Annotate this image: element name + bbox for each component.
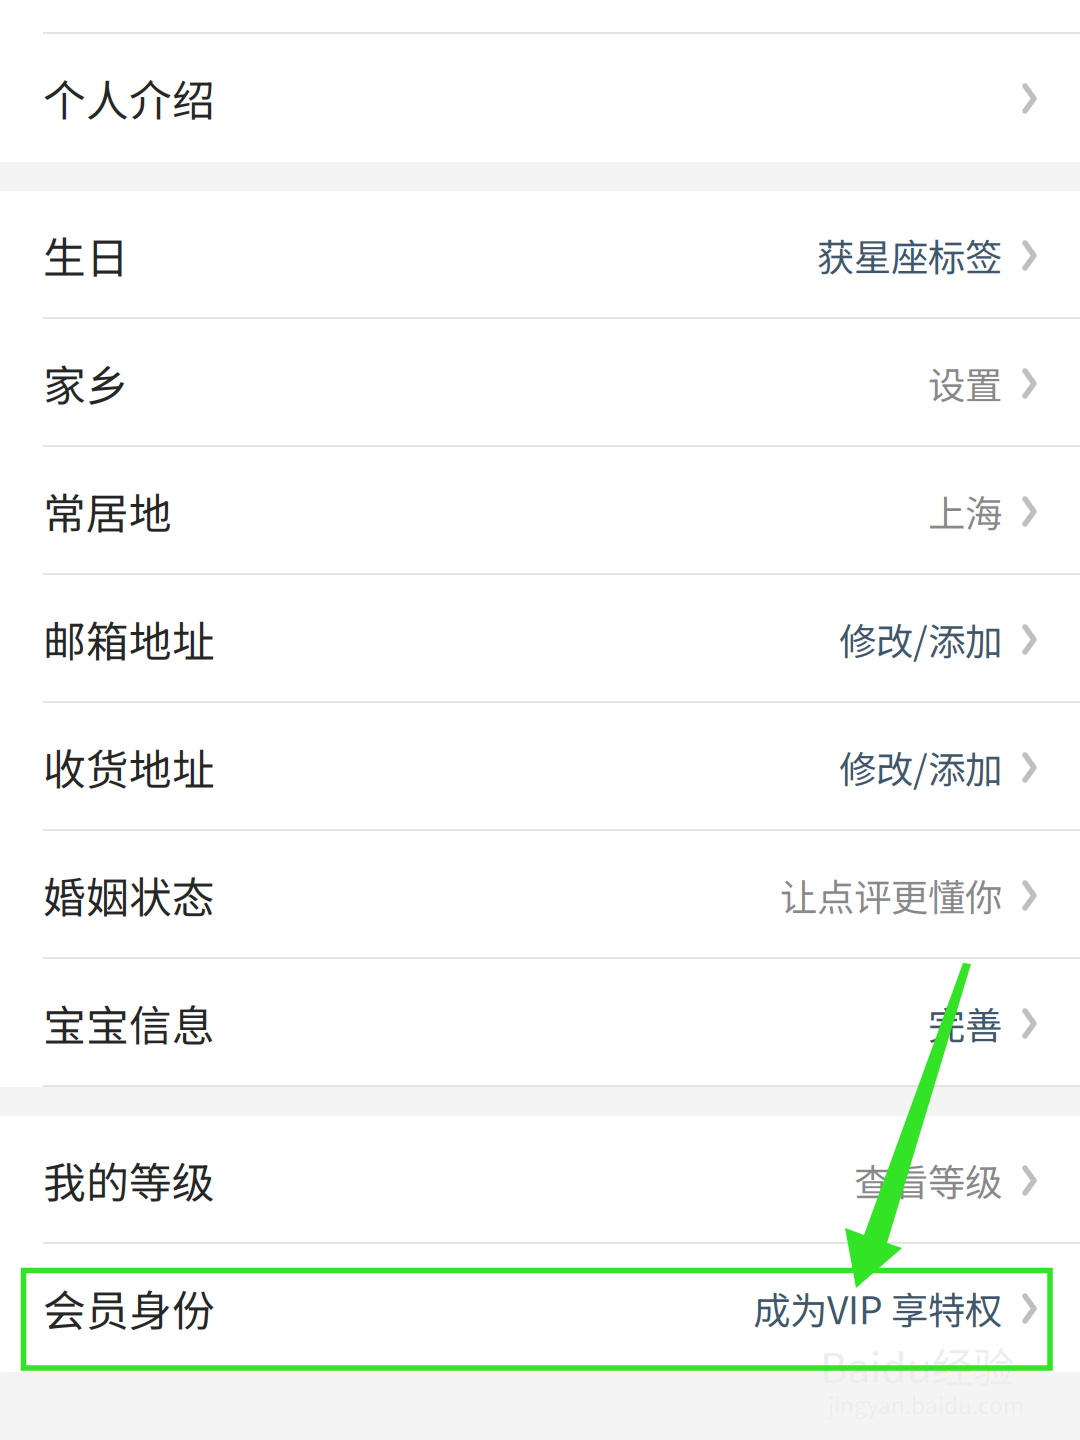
button[interactable]: 会员身份, 成为VIP 享特权 — [0, 1244, 1080, 1372]
staticText: 生日 — [43, 224, 129, 286]
staticText: 修改/添加 — [839, 740, 1002, 794]
staticText: 上海 — [928, 484, 1002, 538]
staticText: 邮箱地址 — [43, 608, 215, 670]
staticText: 获星座标签 — [817, 228, 1002, 282]
staticText: 家乡 — [43, 352, 129, 414]
staticText: 成为VIP 享特权 — [753, 1281, 1002, 1335]
button[interactable]: 婚姻状态, 让点评更懂你 — [0, 831, 1080, 959]
staticText: 常居地 — [43, 480, 172, 542]
staticText: 婚姻状态 — [43, 864, 215, 926]
button[interactable]: 收货地址, 修改/添加 — [0, 703, 1080, 831]
staticText: 设置 — [928, 356, 1002, 410]
staticText: 会员身份 — [43, 1277, 215, 1339]
button[interactable]: 宝宝信息, 完善 — [0, 959, 1080, 1087]
button[interactable]: 家乡, 设置 — [0, 319, 1080, 447]
staticText: 收货地址 — [43, 736, 215, 798]
staticText: 个人介绍 — [43, 67, 215, 129]
button[interactable]: 邮箱地址, 修改/添加 — [0, 575, 1080, 703]
button[interactable]: 常居地, 上海 — [0, 447, 1080, 575]
staticText: 我的等级 — [43, 1149, 215, 1211]
staticText: 查看等级 — [854, 1153, 1002, 1207]
staticText: 宝宝信息 — [43, 992, 215, 1054]
button[interactable]: 我的等级, 查看等级 — [0, 1116, 1080, 1244]
button[interactable]: 个人介绍 — [0, 34, 1080, 162]
staticText: Baidu经验 — [820, 1335, 1014, 1395]
button[interactable]: 生日, 获星座标签 — [0, 191, 1080, 319]
staticText: 让点评更懂你 — [780, 868, 1002, 922]
staticText: 完善 — [928, 996, 1002, 1050]
staticText: 修改/添加 — [839, 612, 1002, 666]
